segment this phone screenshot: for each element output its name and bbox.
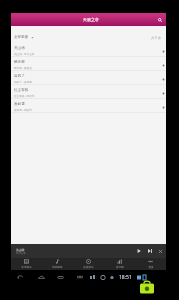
button[interactable]: 发如雪	[11, 99, 166, 113]
button[interactable]: More options	[160, 62, 166, 68]
button[interactable]: Home	[36, 272, 46, 282]
button[interactable]: 起风了	[11, 71, 166, 85]
button[interactable]: Search	[156, 16, 164, 24]
staticText: 天籁之音	[83, 17, 99, 22]
staticText: 共 5 首	[151, 36, 161, 40]
button[interactable]: 更多	[135, 258, 166, 270]
button[interactable]: More options	[160, 104, 166, 110]
button[interactable]: Recent apps	[55, 272, 65, 282]
staticText: 等什么君	[16, 252, 26, 255]
button[interactable]: 本地音乐	[11, 258, 42, 270]
button[interactable]: 醉赤壁	[11, 57, 166, 71]
staticText: 我的歌单	[52, 265, 63, 268]
button[interactable]: 在线音乐	[73, 258, 104, 270]
staticText: 本地音乐	[21, 265, 32, 268]
staticText: 醉赤壁 - 林俊杰	[14, 66, 32, 70]
staticText: 18:51	[119, 274, 132, 281]
staticText: 全部歌曲	[14, 35, 29, 40]
button[interactable]: 全部歌曲	[11, 26, 166, 43]
staticText: 醉赤壁	[14, 60, 25, 65]
button[interactable]: Next track	[145, 246, 155, 256]
button[interactable]: 我的歌单	[42, 258, 73, 270]
staticText: 起风了 - 吴青峰	[14, 80, 32, 84]
staticText: 排行榜	[116, 265, 124, 268]
staticText: 关山酒	[16, 248, 25, 252]
button[interactable]: More options	[160, 48, 166, 54]
button[interactable]: Close	[156, 247, 164, 255]
staticText: 红尘客栈 - 周杰伦	[14, 94, 35, 98]
button[interactable]: More options	[160, 76, 166, 82]
button[interactable]: Screenshot	[75, 272, 85, 282]
staticText: 发如雪	[14, 102, 25, 107]
button[interactable]: 关山酒	[11, 43, 166, 57]
staticText: 在线音乐	[83, 265, 94, 268]
button[interactable]: Play	[134, 246, 144, 256]
button[interactable]: 排行榜	[104, 258, 135, 270]
staticText: 红尘客栈	[14, 88, 29, 93]
button[interactable]: More options	[160, 90, 166, 96]
staticText: 发如雪 - 周杰伦	[14, 108, 32, 112]
staticText: 起风了	[14, 74, 25, 79]
button[interactable]: Back	[15, 272, 25, 282]
button[interactable]: 红尘客栈	[11, 85, 166, 99]
staticText: 关山酒 - 等什么君	[14, 52, 35, 56]
staticText: 关山酒	[14, 46, 25, 51]
staticText: 更多	[148, 265, 154, 268]
